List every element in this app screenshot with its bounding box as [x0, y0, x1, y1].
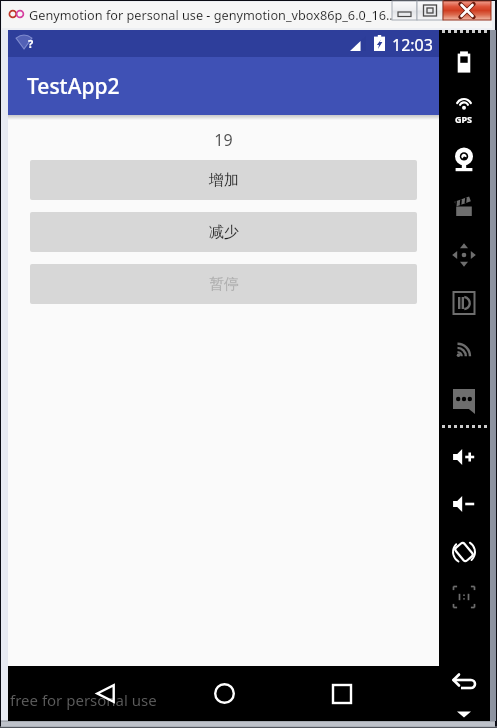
- staticText: free for personal use: [10, 690, 157, 710]
- button[interactable]: Scale 1:1: [447, 582, 481, 612]
- staticText: 12:03: [392, 34, 433, 56]
- button[interactable]: 增加: [30, 160, 417, 200]
- staticText: GPS: [455, 113, 473, 125]
- button[interactable]: Camera: [447, 144, 481, 174]
- staticText: TestApp2: [27, 72, 120, 101]
- staticText: 暂停: [209, 275, 239, 294]
- button[interactable]: Back: [85, 673, 125, 713]
- button[interactable]: Maximize: [417, 1, 443, 20]
- staticText: 19: [8, 129, 439, 151]
- button[interactable]: SMS: [447, 384, 481, 414]
- button[interactable]: GPS: [447, 97, 481, 127]
- button[interactable]: 减少: [30, 212, 417, 252]
- button[interactable]: Volume up: [447, 442, 481, 472]
- button[interactable]: Battery: [447, 47, 481, 77]
- button[interactable]: Navigation: [447, 240, 481, 270]
- button[interactable]: More: [453, 708, 475, 720]
- button[interactable]: Close: [443, 1, 491, 20]
- staticText: 减少: [209, 223, 239, 242]
- button[interactable]: Volume down: [447, 489, 481, 519]
- button[interactable]: Home: [204, 673, 244, 713]
- staticText: Genymotion for personal use - genymotion…: [29, 6, 397, 23]
- staticText: ?: [28, 36, 34, 51]
- button[interactable]: Network: [447, 335, 481, 365]
- button[interactable]: Video: [447, 191, 481, 221]
- button[interactable]: Rotate: [447, 537, 481, 567]
- button[interactable]: Identifiers: [447, 288, 481, 318]
- button[interactable]: Recent apps: [322, 674, 362, 714]
- button[interactable]: Back: [447, 668, 481, 698]
- staticText: 增加: [209, 171, 239, 190]
- button[interactable]: Minimize: [392, 1, 417, 20]
- button[interactable]: 暂停: [30, 264, 417, 304]
